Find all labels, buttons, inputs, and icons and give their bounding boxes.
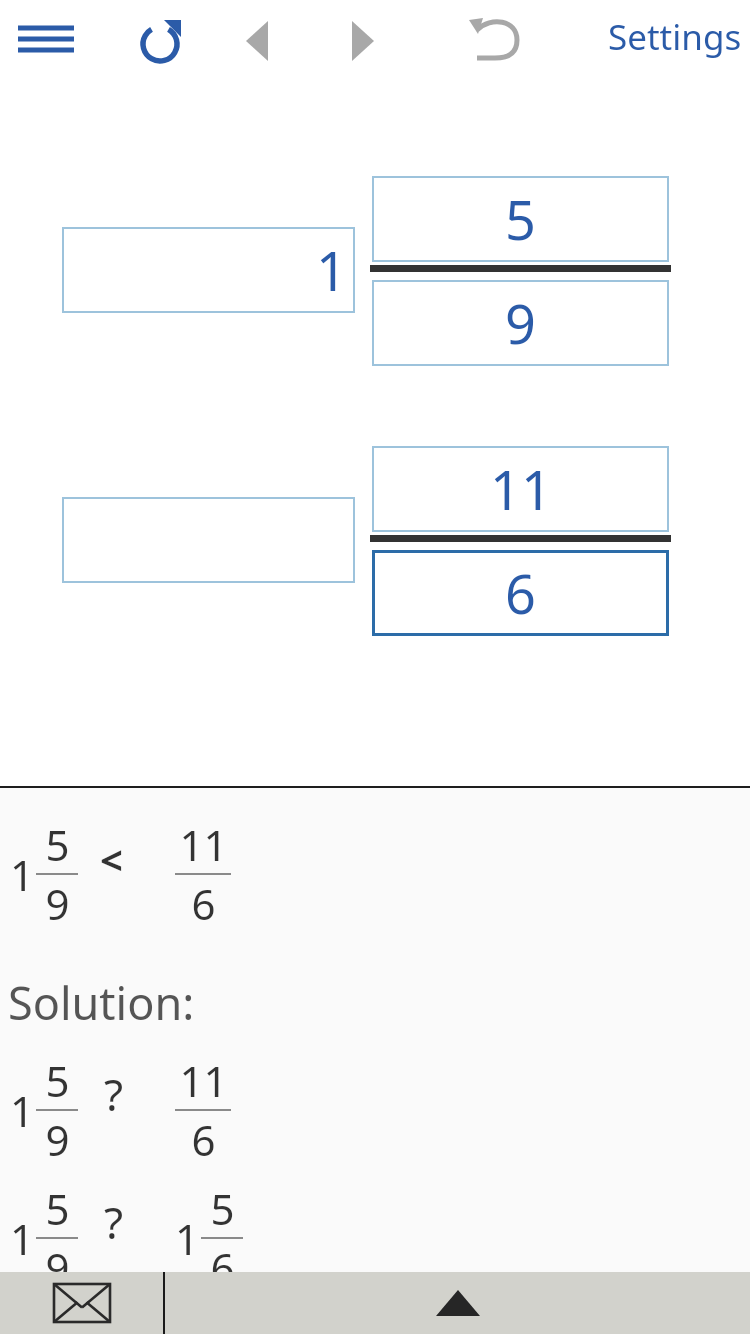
button[interactable]: Whole number field: [62, 227, 355, 313]
staticText: 9: [45, 1239, 70, 1296]
staticText: 1: [316, 233, 347, 307]
staticText: 6: [191, 875, 216, 932]
button[interactable]: Undo: [454, 4, 534, 78]
button[interactable]: Refresh: [122, 4, 198, 78]
staticText: 11: [490, 452, 552, 526]
staticText: 1: [10, 846, 35, 903]
button[interactable]: Expand: [165, 1272, 750, 1334]
staticText: 1: [10, 1082, 35, 1139]
staticText: ?: [104, 1192, 124, 1252]
staticText: 5: [45, 1052, 70, 1109]
staticText: 9: [45, 875, 70, 932]
button[interactable]: Previous: [222, 8, 292, 74]
button[interactable]: Next: [328, 8, 398, 74]
button[interactable]: Mail: [0, 1272, 164, 1334]
staticText: 5: [45, 816, 70, 873]
button[interactable]: Menu: [6, 6, 86, 76]
staticText: 9: [45, 1111, 70, 1168]
staticText: 9: [505, 286, 536, 360]
staticText: 5: [45, 1180, 70, 1237]
staticText: 5: [210, 1180, 235, 1237]
staticText: <: [100, 832, 123, 886]
staticText: Settings: [608, 13, 742, 61]
staticText: ?: [104, 1064, 124, 1124]
button[interactable]: Denominator field: [372, 550, 669, 636]
button[interactable]: Denominator field: [372, 280, 669, 366]
staticText: 11: [179, 816, 228, 873]
button[interactable]: Whole number field: [62, 497, 355, 583]
staticText: 1: [175, 1210, 200, 1267]
button[interactable]: Numerator field: [372, 446, 669, 532]
staticText: 11: [179, 1052, 228, 1109]
staticText: 6: [210, 1239, 235, 1296]
staticText: Solution:: [8, 972, 195, 1033]
staticText: 6: [191, 1111, 216, 1168]
staticText: 6: [505, 556, 536, 630]
button[interactable]: Numerator field: [372, 176, 669, 262]
staticText: 5: [505, 182, 536, 256]
staticText: 1: [10, 1210, 35, 1267]
button[interactable]: Settings: [602, 4, 748, 70]
